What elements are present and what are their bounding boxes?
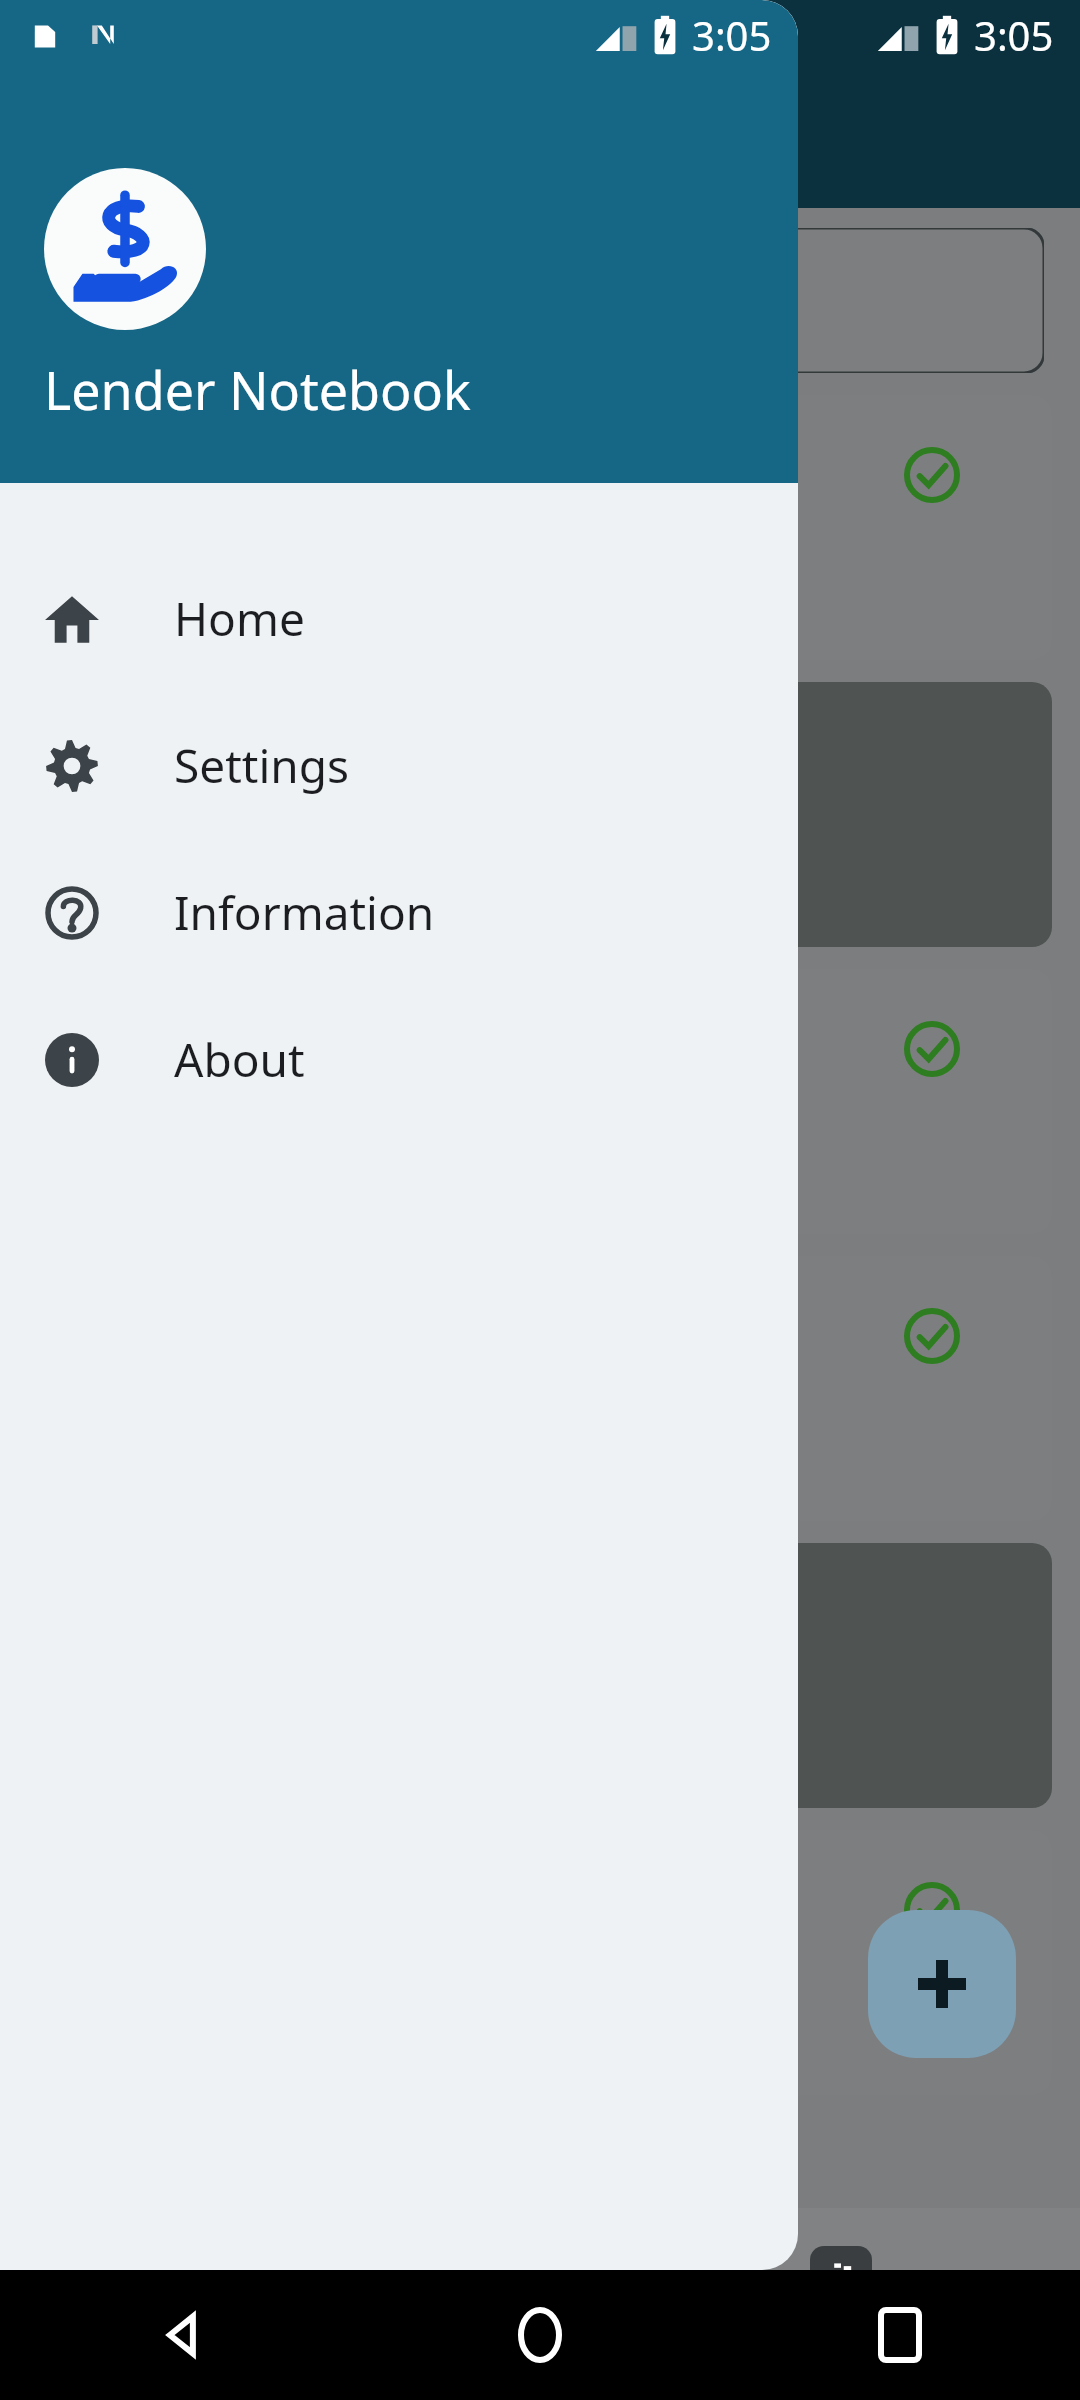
staticText: Settings bbox=[174, 734, 350, 797]
button[interactable]: Recent apps bbox=[720, 2270, 1080, 2400]
staticText: 3:05 bbox=[692, 8, 772, 62]
button[interactable]: Home bbox=[360, 2270, 720, 2400]
button[interactable] bbox=[36, 395, 1052, 660]
staticText: RECEIPT bbox=[64, 764, 211, 810]
button[interactable]: Settings bbox=[0, 692, 798, 839]
staticText: Lender Notebook bbox=[44, 354, 471, 425]
button[interactable]: RECEIPT bbox=[36, 1543, 1052, 1808]
staticText: Information bbox=[174, 881, 435, 944]
button[interactable]: Add bbox=[868, 1910, 1016, 2058]
staticText: 3:05 bbox=[974, 8, 1054, 62]
button[interactable] bbox=[36, 1256, 1052, 1521]
button[interactable] bbox=[36, 969, 1052, 1234]
button[interactable] bbox=[36, 228, 1044, 373]
button[interactable]: Home bbox=[0, 545, 798, 692]
button[interactable]: Information bbox=[0, 839, 798, 986]
button[interactable]: About bbox=[0, 986, 798, 1133]
button[interactable]: Back bbox=[0, 2270, 360, 2400]
staticText: About bbox=[174, 1028, 305, 1091]
staticText: Home bbox=[174, 587, 305, 650]
button[interactable] bbox=[36, 1830, 1052, 2095]
staticText: Report bbox=[793, 2322, 889, 2363]
button[interactable]: Report bbox=[682, 2208, 1000, 2400]
button[interactable]: RECEIPT bbox=[36, 682, 1052, 947]
